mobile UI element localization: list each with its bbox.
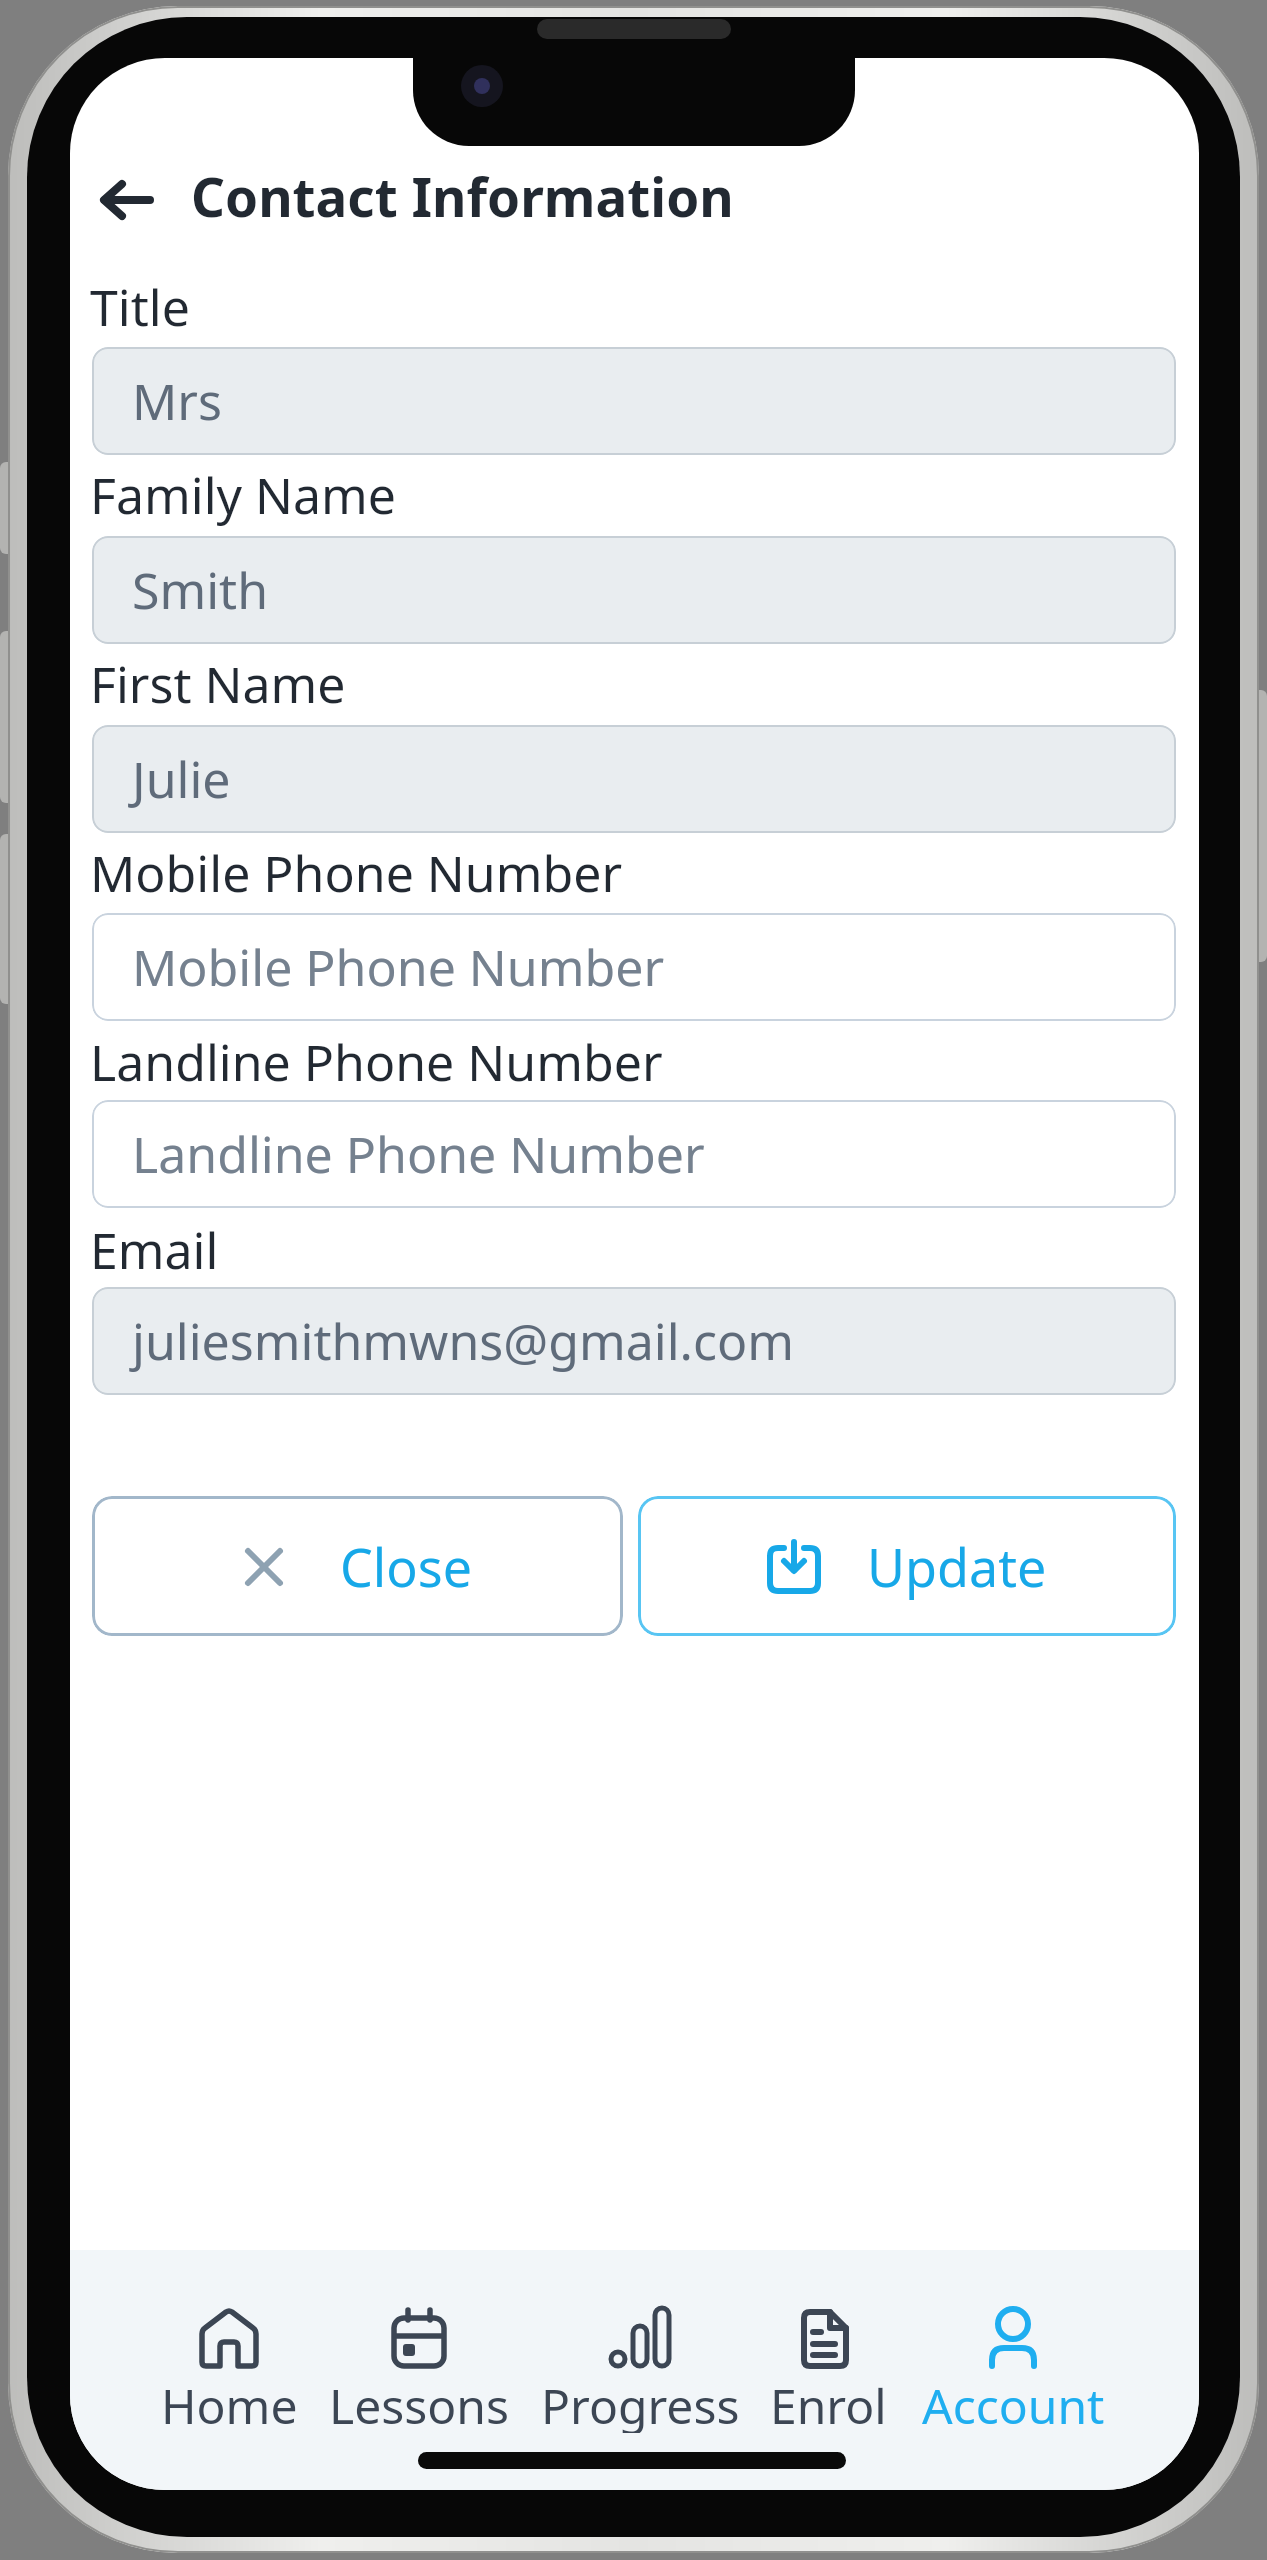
staticText: Email [90, 1216, 219, 1284]
staticText: Update [867, 1531, 1047, 1602]
staticText: Home [161, 2373, 298, 2433]
staticText: Smith [132, 556, 269, 624]
staticText: First Name [90, 650, 346, 718]
button[interactable]: Progress [530, 2308, 750, 2458]
button[interactable]: Enrol [718, 2308, 938, 2458]
button[interactable]: Landline Phone Number [92, 1100, 1176, 1208]
staticText: Mobile Phone Number [132, 933, 665, 1001]
staticText: Lessons [329, 2373, 509, 2433]
staticText: Landline Phone Number [90, 1028, 663, 1096]
staticText: Progress [541, 2373, 740, 2433]
button[interactable]: juliesmithmwns@gmail.com [92, 1287, 1176, 1395]
button[interactable]: Update [638, 1496, 1176, 1636]
staticText: Landline Phone Number [132, 1120, 705, 1188]
button[interactable]: Mrs [92, 347, 1176, 455]
button[interactable]: Lessons [309, 2308, 529, 2458]
staticText: Family Name [90, 461, 397, 529]
button[interactable]: Home [119, 2308, 339, 2458]
staticText: Contact Information [191, 160, 734, 232]
staticText: Enrol [770, 2373, 887, 2433]
button[interactable] [98, 180, 154, 220]
button[interactable]: Close [92, 1496, 623, 1636]
staticText: Julie [132, 745, 231, 813]
staticText: juliesmithmwns@gmail.com [132, 1307, 794, 1375]
staticText: Mobile Phone Number [90, 839, 623, 907]
button[interactable]: Julie [92, 725, 1176, 833]
button[interactable]: Account [903, 2308, 1123, 2458]
staticText: Title [90, 273, 190, 341]
staticText: Close [340, 1531, 472, 1602]
staticText: Account [922, 2373, 1105, 2433]
button[interactable]: Smith [92, 536, 1176, 644]
staticText: Mrs [132, 367, 222, 435]
button[interactable]: Mobile Phone Number [92, 913, 1176, 1021]
